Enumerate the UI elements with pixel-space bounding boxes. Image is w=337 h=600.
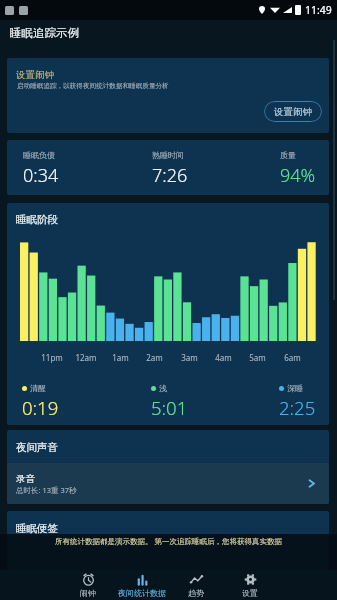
button[interactable]: Alarm [61,570,115,600]
staticText: 闹钟 [80,588,96,598]
other: Night stats [136,573,149,586]
staticText: 启动睡眠追踪，以获得夜间统计数据和睡眠质量分析 [17,82,169,90]
staticText: 11:49 [305,3,332,17]
staticText: 5:01 [151,395,188,420]
button[interactable]: Trends [169,570,223,600]
other: Settings [244,573,257,586]
staticText: 94% [280,163,316,188]
staticText: 12am [75,352,97,363]
button[interactable]: Settings [223,570,277,600]
staticText: 质量 [280,150,296,160]
staticText: 11pm [41,352,63,363]
staticText: 浅 [159,383,167,393]
staticText: 设置 [242,588,258,598]
staticText: 4am [215,352,232,363]
staticText: 夜间声音 [16,441,58,454]
staticText: 2am [146,352,163,363]
staticText: 5am [249,352,266,363]
staticText: 趋势 [188,588,204,598]
staticText: 睡眠负债 [23,150,55,160]
staticText: 夜间统计数据 [118,588,166,598]
staticText: 睡眠便签 [16,522,58,535]
staticText: 所有统计数据都是演示数据。 第一次追踪睡眠后，您将获得真实数据 [55,536,282,546]
other: Alarm [82,573,95,586]
other: Trends [190,573,203,586]
staticText: 熟睡时间 [152,150,184,160]
staticText: 总时长: 13重 37秒 [16,485,77,495]
button[interactable]: 录音 [7,463,329,504]
staticText: 0:19 [22,395,59,420]
button[interactable]: Night stats [115,570,169,600]
staticText: 0:34 [23,163,59,188]
staticText: 录音 [16,473,35,485]
staticText: 睡眠阶段 [16,213,58,226]
staticText: 3am [181,352,198,363]
button[interactable]: 设置闹钟 [264,101,322,122]
staticText: 2:25 [279,395,316,420]
staticText: 1am [112,352,129,363]
staticText: 设置闹钟 [274,106,312,118]
staticText: 深睡 [287,383,303,393]
staticText: 6am [284,352,301,363]
staticText: 清醒 [30,383,46,393]
staticText: 设置闹钟 [16,69,54,81]
staticText: 7:26 [152,163,188,188]
staticText: 睡眠追踪示例 [10,26,79,40]
